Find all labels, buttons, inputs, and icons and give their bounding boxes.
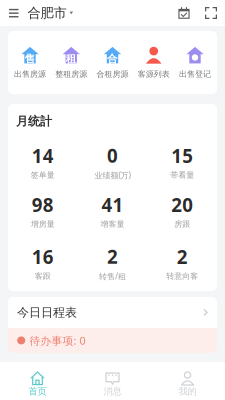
staticText: 合租房源 bbox=[96, 69, 128, 79]
staticText: 售 bbox=[24, 52, 35, 65]
staticText: 增房量 bbox=[31, 219, 55, 229]
button[interactable]: 消息 bbox=[75, 371, 150, 397]
staticText: 41 bbox=[101, 192, 123, 217]
staticText: 带看量 bbox=[170, 170, 194, 180]
staticText: 2 bbox=[107, 244, 118, 269]
staticText: 租 bbox=[66, 52, 77, 65]
staticText: 14 bbox=[32, 143, 54, 168]
staticText: 客跟 bbox=[35, 271, 51, 281]
staticText: 0 bbox=[107, 143, 118, 168]
button[interactable]: 合肥市 bbox=[27, 0, 73, 29]
staticText: 房跟 bbox=[174, 219, 190, 229]
staticText: 合肥市 bbox=[27, 5, 66, 21]
staticText: 增客量 bbox=[100, 219, 124, 229]
staticText: 整租房源 bbox=[55, 69, 87, 79]
staticText: 出售房源 bbox=[14, 69, 46, 79]
staticText: 月统計 bbox=[16, 114, 52, 129]
staticText: 20 bbox=[171, 192, 193, 217]
staticText: 待办事项: 0 bbox=[29, 333, 85, 348]
button[interactable]: Menu bbox=[0, 0, 27, 26]
staticText: 15 bbox=[171, 143, 193, 168]
button[interactable]: 租 bbox=[51, 46, 91, 79]
button[interactable]: 首页 bbox=[0, 371, 75, 397]
button[interactable]: Scan bbox=[197, 0, 225, 26]
button[interactable]: Calendar bbox=[171, 0, 197, 26]
staticText: 16 bbox=[32, 244, 54, 269]
staticText: 首页 bbox=[28, 386, 46, 397]
staticText: 签单量 bbox=[31, 170, 55, 180]
button[interactable]: 出售登记 bbox=[175, 46, 215, 79]
staticText: 出售登记 bbox=[179, 69, 211, 79]
staticText: 合 bbox=[107, 52, 118, 65]
button[interactable]: 我的 bbox=[150, 371, 225, 397]
staticText: 客源列表 bbox=[138, 69, 170, 79]
staticText: 我的 bbox=[178, 386, 196, 397]
staticText: 今日日程表 bbox=[17, 305, 77, 320]
staticText: 2 bbox=[177, 244, 188, 269]
button[interactable]: 合 bbox=[92, 46, 132, 79]
staticText: 98 bbox=[32, 192, 54, 217]
staticText: 转意向客 bbox=[166, 271, 198, 281]
button[interactable]: 客源列表 bbox=[134, 46, 174, 79]
staticText: 业绩额(万) bbox=[94, 170, 130, 180]
button[interactable]: 售 bbox=[10, 46, 50, 79]
staticText: 消息 bbox=[103, 386, 121, 397]
staticText: 转售/租 bbox=[99, 271, 126, 281]
button[interactable]: 今日日程表 bbox=[8, 297, 217, 328]
